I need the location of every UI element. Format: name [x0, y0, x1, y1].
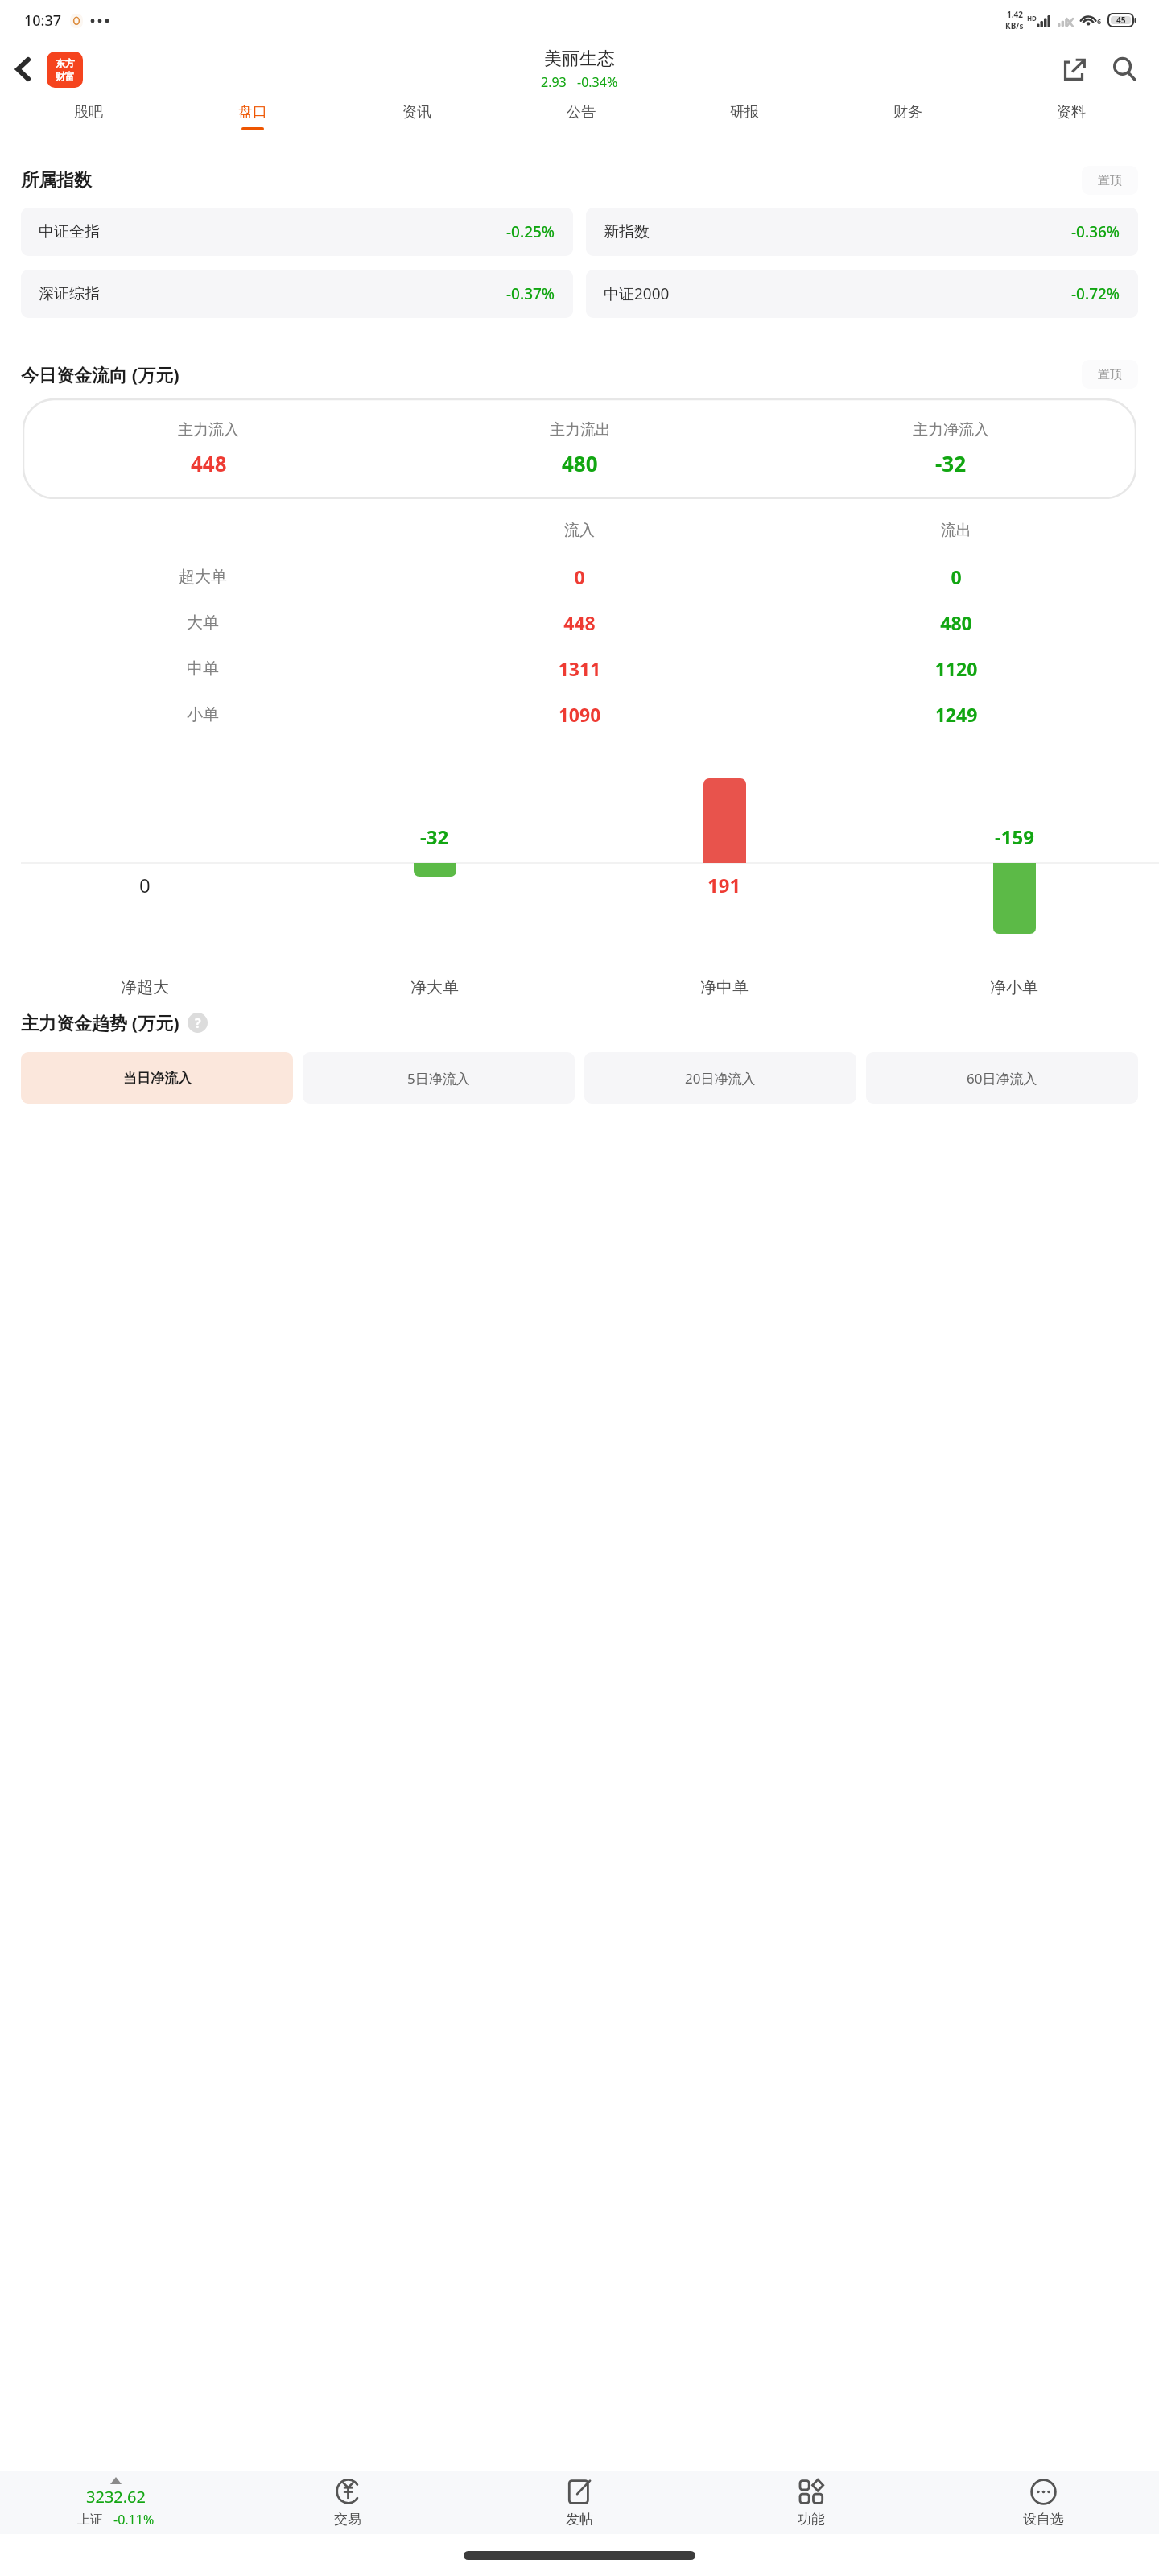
- staticText: 主力净流入: [913, 420, 989, 440]
- staticText: 研报: [730, 103, 759, 122]
- staticText: -0.36%: [1071, 221, 1120, 242]
- staticText: 置顶: [1098, 173, 1122, 188]
- staticText: 当日净流入: [123, 1070, 192, 1087]
- button[interactable]: 功能: [695, 2471, 927, 2534]
- button[interactable]: 当日净流入: [21, 1052, 293, 1104]
- button[interactable]: Back: [0, 40, 47, 98]
- staticText: 448: [391, 610, 768, 635]
- staticText: 5日净流入: [407, 1069, 470, 1088]
- staticText: 净大单: [290, 977, 579, 997]
- staticText: 6: [1097, 16, 1102, 26]
- staticText: 60日净流入: [967, 1069, 1037, 1088]
- staticText: 新指数: [604, 222, 650, 242]
- staticText: 流入: [391, 521, 768, 540]
- staticText: 10:37: [24, 10, 62, 31]
- staticText: 东方: [56, 57, 75, 69]
- staticText: 2.93: [541, 73, 567, 91]
- button[interactable]: 大单: [14, 600, 1145, 646]
- staticText: 0: [139, 872, 151, 898]
- staticText: 1.42: [1007, 9, 1023, 20]
- staticText: 发帖: [566, 2511, 593, 2528]
- button[interactable]: 交易: [232, 2471, 464, 2534]
- staticText: 1120: [768, 656, 1145, 681]
- staticText: 公告: [567, 103, 596, 122]
- staticText: 1090: [391, 702, 768, 727]
- staticText: 1311: [391, 656, 768, 681]
- button[interactable]: 资料: [989, 98, 1153, 143]
- staticText: -0.72%: [1071, 283, 1120, 304]
- button[interactable]: 设自选: [927, 2471, 1159, 2534]
- staticText: 191: [707, 872, 741, 898]
- staticText: 0: [391, 564, 768, 589]
- staticText: 3232.62: [86, 2486, 146, 2508]
- staticText: 480: [562, 449, 598, 477]
- button[interactable]: 公告: [499, 98, 662, 143]
- staticText: 所属指数: [21, 169, 92, 192]
- staticText: 净中单: [579, 977, 869, 997]
- staticText: 主力流出: [550, 420, 611, 440]
- staticText: 上证: [77, 2512, 103, 2528]
- staticText: 小单: [14, 704, 391, 724]
- button[interactable]: 超大单: [14, 554, 1145, 600]
- button[interactable]: 中证2000: [586, 270, 1138, 318]
- button[interactable]: 20日净流入: [584, 1052, 856, 1104]
- button[interactable]: 中单: [14, 646, 1145, 691]
- button[interactable]: 股吧: [6, 98, 171, 143]
- staticText: -32: [420, 824, 449, 850]
- staticText: 480: [768, 610, 1145, 635]
- staticText: 美丽生态: [544, 47, 615, 70]
- button[interactable]: 盘口: [171, 98, 335, 143]
- button[interactable]: 小单: [14, 691, 1145, 737]
- button[interactable]: 5日净流入: [303, 1052, 575, 1104]
- button[interactable]: 新指数: [586, 208, 1138, 256]
- staticText: -32: [935, 449, 967, 477]
- button[interactable]: 3232.62: [0, 2471, 232, 2534]
- staticText: 资讯: [402, 103, 431, 122]
- staticText: -0.11%: [113, 2511, 155, 2529]
- staticText: 财务: [893, 103, 922, 122]
- staticText: 流出: [768, 521, 1145, 540]
- staticText: 净小单: [869, 977, 1159, 997]
- staticText: 主力流入: [178, 420, 239, 440]
- button[interactable]: Share: [1050, 40, 1099, 98]
- staticText: 45: [1116, 14, 1126, 26]
- staticText: 中证全指: [39, 222, 100, 242]
- staticText: 大单: [14, 613, 391, 633]
- staticText: 主力资金趋势 (万元): [21, 1010, 179, 1034]
- staticText: KB/s: [1005, 20, 1024, 31]
- staticText: ?: [195, 1014, 201, 1032]
- staticText: 净超大: [0, 977, 290, 997]
- staticText: 功能: [798, 2511, 825, 2528]
- staticText: 盘口: [238, 103, 267, 122]
- staticText: -0.25%: [506, 221, 555, 242]
- staticText: HD: [1027, 14, 1037, 23]
- staticText: 股吧: [74, 103, 103, 122]
- button[interactable]: 60日净流入: [866, 1052, 1138, 1104]
- button[interactable]: 东方财富: [47, 52, 83, 88]
- button[interactable]: 发帖: [464, 2471, 695, 2534]
- staticText: 0: [768, 564, 1145, 589]
- staticText: 深证综指: [39, 284, 100, 303]
- staticText: 448: [191, 449, 227, 477]
- button[interactable]: 财务: [826, 98, 989, 143]
- staticText: 20日净流入: [685, 1069, 756, 1088]
- staticText: 设自选: [1023, 2511, 1064, 2528]
- button[interactable]: 深证综指: [21, 270, 573, 318]
- button[interactable]: Help: [188, 1013, 208, 1033]
- staticText: 今日资金流向 (万元): [21, 362, 179, 386]
- staticText: 中单: [14, 658, 391, 679]
- button[interactable]: 置顶: [1082, 166, 1138, 195]
- button[interactable]: 中证全指: [21, 208, 573, 256]
- staticText: -0.37%: [506, 283, 555, 304]
- staticText: 交易: [334, 2511, 361, 2528]
- staticText: -159: [995, 824, 1034, 850]
- button[interactable]: 研报: [662, 98, 826, 143]
- button[interactable]: 资讯: [335, 98, 499, 143]
- button[interactable]: 置顶: [1082, 360, 1138, 389]
- staticText: 资料: [1057, 103, 1086, 122]
- staticText: 超大单: [14, 567, 391, 587]
- staticText: 财富: [56, 70, 75, 82]
- staticText: 置顶: [1098, 367, 1122, 382]
- button[interactable]: Search: [1099, 40, 1149, 98]
- staticText: 中证2000: [604, 283, 670, 304]
